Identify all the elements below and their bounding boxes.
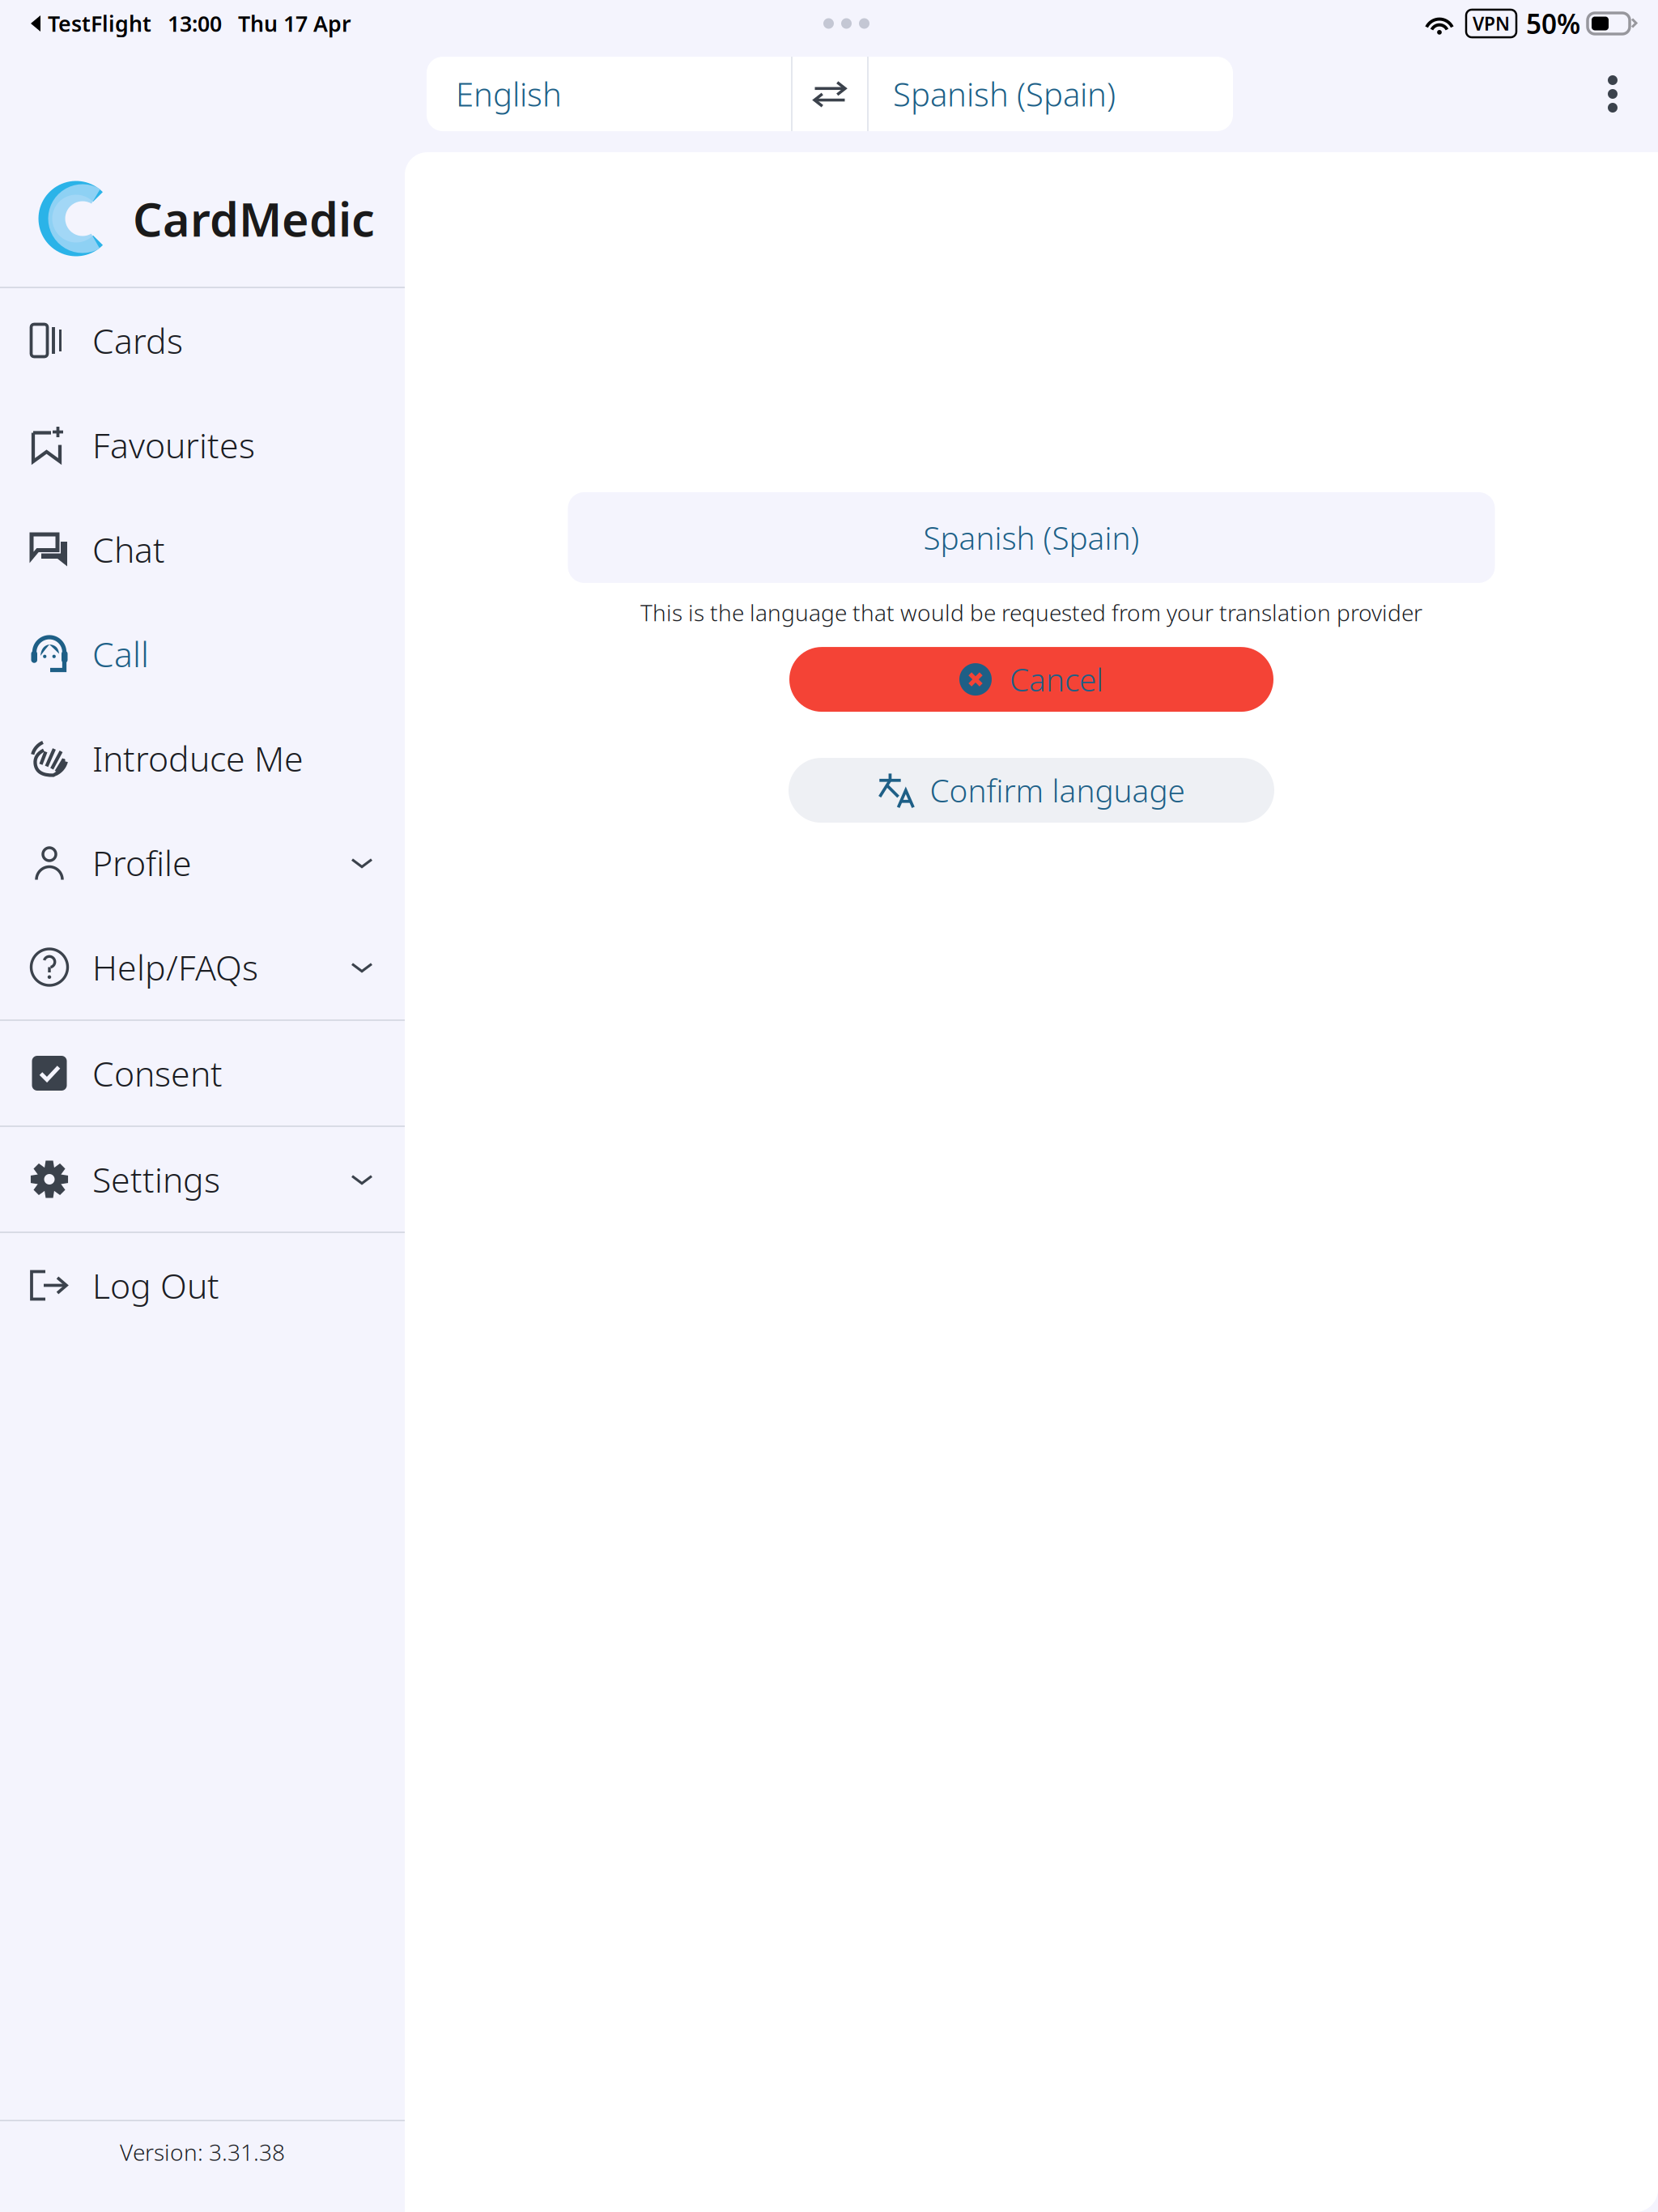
staticText: This is the language that would be reque…	[640, 597, 1422, 628]
button[interactable]: More options	[1574, 57, 1652, 131]
staticText: Favourites	[92, 422, 255, 468]
button[interactable]: Introduce Me	[0, 706, 405, 810]
staticText: Cards	[92, 318, 183, 363]
staticText: Introduce Me	[92, 735, 304, 781]
button[interactable]: Cards	[0, 288, 405, 393]
staticText: 50%	[1526, 6, 1580, 41]
button[interactable]: Spanish (Spain)	[869, 57, 1233, 131]
staticText: Profile	[92, 840, 192, 886]
button[interactable]: Settings	[0, 1127, 405, 1231]
button[interactable]: Log Out	[0, 1233, 405, 1338]
staticText: 13:00	[168, 9, 222, 38]
button[interactable]: Swap languages	[793, 57, 867, 131]
staticText: Call	[92, 631, 149, 677]
staticText: Version: 3.31.38	[120, 2137, 285, 2167]
button[interactable]: Call	[0, 602, 405, 706]
staticText: CardMedic	[133, 188, 375, 249]
staticText: Log Out	[92, 1262, 219, 1308]
staticText: English	[456, 72, 562, 115]
staticText: Consent	[92, 1050, 223, 1096]
staticText: Settings	[92, 1156, 220, 1202]
staticText: Cancel	[1010, 659, 1103, 700]
button[interactable]: Chat	[0, 497, 405, 602]
staticText: Confirm language	[930, 770, 1185, 811]
staticText: Chat	[92, 526, 165, 572]
staticText: Spanish (Spain)	[923, 517, 1139, 558]
staticText: TestFlight	[48, 9, 151, 38]
button[interactable]: Consent	[0, 1021, 405, 1125]
button[interactable]: Cancel	[789, 647, 1273, 712]
staticText: VPN	[1473, 11, 1510, 36]
button[interactable]: Help/FAQs	[0, 915, 405, 1019]
button[interactable]: Confirm language	[789, 758, 1274, 823]
button[interactable]: Profile	[0, 810, 405, 915]
button[interactable]: English	[427, 57, 791, 131]
staticText: Help/FAQs	[92, 944, 258, 990]
staticText: Thu 17 Apr	[238, 9, 351, 38]
staticText: Spanish (Spain)	[893, 72, 1116, 115]
button[interactable]: Favourites	[0, 393, 405, 497]
